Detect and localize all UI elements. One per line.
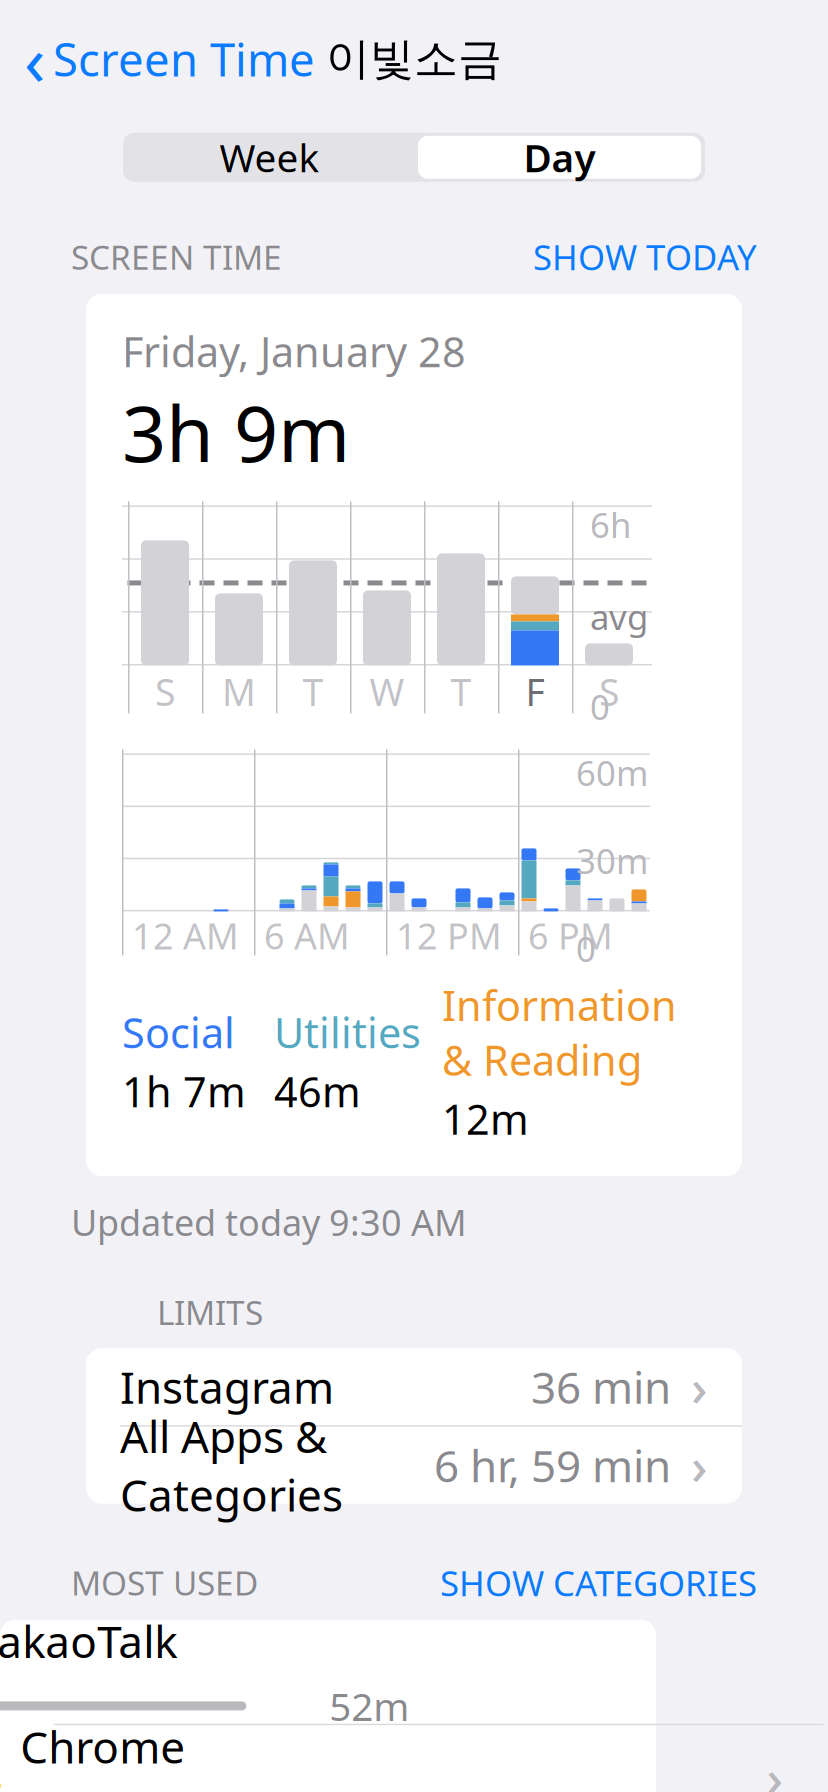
staticText: 6h — [590, 501, 631, 547]
staticText: W — [369, 667, 404, 716]
staticText: 이빛소금 — [326, 32, 502, 86]
staticText: 52m — [329, 1680, 409, 1731]
button[interactable]: Instagram — [86, 1348, 742, 1427]
staticText: 12 AM — [132, 911, 239, 959]
button[interactable]: ‹ — [0, 29, 339, 89]
staticText: Week — [219, 132, 319, 183]
button[interactable]: Day — [415, 136, 704, 179]
staticText: 60m — [576, 749, 648, 795]
staticText: Updated today 9:30 AM — [71, 1198, 467, 1246]
staticText: Screen Time — [53, 29, 315, 89]
staticText: M — [222, 667, 256, 716]
staticText: SHOW CATEGORIES — [440, 1560, 757, 1606]
staticText: MOST USED — [71, 1560, 258, 1605]
staticText: Chrome — [20, 1717, 185, 1776]
staticText: KakaoTalk — [0, 1612, 177, 1670]
staticText: 36 min — [531, 1357, 671, 1416]
button[interactable]: TALK — [0, 1620, 768, 1725]
staticText: SCREEN TIME — [71, 235, 282, 279]
staticText: F — [525, 667, 544, 716]
staticText: Instagram — [120, 1357, 334, 1416]
staticText: Social — [122, 1005, 235, 1060]
staticText: 12m — [442, 1091, 529, 1146]
staticText: › — [766, 1744, 783, 1792]
staticText: 1h 7m — [122, 1064, 246, 1119]
staticText: SHOW TODAY — [533, 234, 757, 280]
staticText: LIMITS — [157, 1290, 263, 1334]
button[interactable]: Chrome — [0, 1725, 728, 1792]
staticText: 0 — [576, 925, 596, 971]
staticText: 30m — [576, 837, 648, 883]
button[interactable]: SHOW CATEGORIES — [440, 1560, 757, 1606]
staticText: avg — [590, 593, 648, 639]
staticText: 3h 9m — [122, 381, 350, 483]
button[interactable]: Week — [124, 133, 415, 182]
staticText: 0 — [590, 683, 610, 729]
staticText: › — [691, 1431, 708, 1499]
staticText: 6 hr, 59 min — [434, 1436, 671, 1494]
staticText: Utilities — [274, 1005, 421, 1060]
staticText: 46m — [274, 1064, 361, 1119]
staticText: Information & Reading — [442, 977, 677, 1087]
button[interactable]: All Apps & Categories — [86, 1427, 742, 1504]
staticText: S — [599, 667, 619, 716]
staticText: 6 AM — [264, 911, 350, 959]
staticText: Friday, January 28 — [122, 324, 466, 379]
staticText: S — [155, 667, 175, 716]
staticText: All Apps & Categories — [120, 1407, 343, 1524]
staticText: 6 PM — [528, 911, 613, 959]
staticText: › — [691, 1353, 708, 1420]
staticText: 12 PM — [396, 911, 502, 959]
staticText: T — [450, 667, 471, 716]
staticText: ‹ — [24, 13, 45, 105]
staticText: Day — [523, 132, 595, 183]
staticText: T — [302, 667, 323, 716]
button[interactable]: SHOW TODAY — [533, 234, 757, 280]
